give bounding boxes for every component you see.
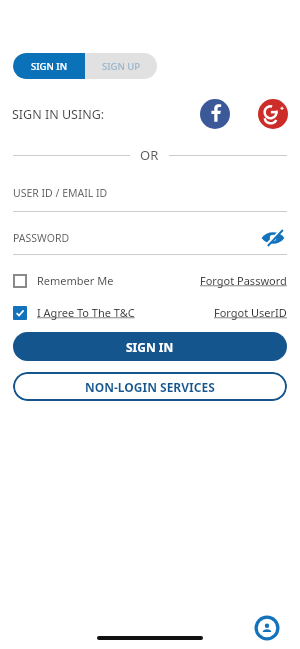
staticText: OR <box>140 146 159 164</box>
button[interactable]: I Agree To The T&C <box>13 305 135 320</box>
staticText: SIGN IN <box>31 60 68 73</box>
staticText: NON-LOGIN SERVICES <box>85 379 215 395</box>
staticText: SIGN UP <box>102 60 141 73</box>
staticText: SIGN IN USING: <box>12 106 105 123</box>
staticText: Forgot UserID <box>214 305 287 320</box>
staticText: USER ID / EMAIL ID <box>13 186 108 200</box>
staticText: PASSWORD <box>13 231 70 245</box>
button[interactable]: SIGN IN <box>13 332 287 361</box>
button[interactable]: Account <box>254 615 280 641</box>
button[interactable]: USER ID / EMAIL ID <box>13 186 287 212</box>
button[interactable]: NON-LOGIN SERVICES <box>13 372 287 401</box>
button[interactable]: Forgot Password <box>200 273 287 288</box>
staticText: SIGN IN <box>126 339 174 355</box>
button[interactable]: SIGN IN <box>13 53 85 79</box>
button[interactable]: SIGN UP <box>85 53 157 79</box>
button[interactable]: Sign in with Google Plus <box>258 99 288 129</box>
staticText: I Agree To The T&C <box>37 305 135 320</box>
button[interactable]: Forgot UserID <box>214 305 287 320</box>
button[interactable]: Sign in with Facebook <box>200 99 230 129</box>
staticText: Forgot Password <box>200 273 287 288</box>
staticText: Remember Me <box>37 273 114 288</box>
button[interactable]: Show password <box>259 229 287 247</box>
button[interactable]: Remember Me <box>13 273 114 288</box>
